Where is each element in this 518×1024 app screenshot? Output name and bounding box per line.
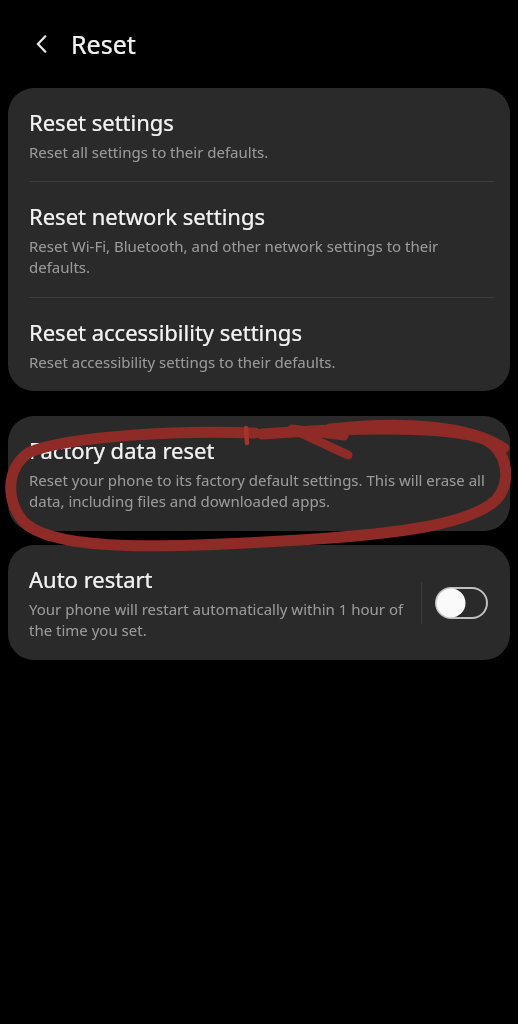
staticText: Reset accessibility settings to their de… bbox=[29, 352, 336, 372]
staticText: Reset bbox=[71, 27, 136, 61]
button[interactable]: Reset accessibility settings bbox=[8, 298, 510, 391]
button[interactable]: Reset settings bbox=[8, 88, 510, 181]
staticText: Reset all settings to their defaults. bbox=[29, 142, 269, 162]
staticText: Reset Wi-Fi, Bluetooth, and other networ… bbox=[29, 236, 486, 278]
staticText: Reset your phone to its factory default … bbox=[29, 470, 486, 512]
button[interactable]: Back bbox=[22, 24, 62, 64]
staticText: Reset settings bbox=[29, 107, 174, 137]
staticText: Auto restart bbox=[29, 564, 153, 594]
staticText: Your phone will restart automatically wi… bbox=[29, 599, 411, 641]
button[interactable]: Factory data reset bbox=[8, 416, 510, 531]
staticText: Reset network settings bbox=[29, 201, 265, 231]
button[interactable]: Auto restart bbox=[8, 545, 421, 660]
button[interactable]: Reset network settings bbox=[8, 182, 510, 297]
button[interactable]: Auto restart toggle, off bbox=[436, 583, 490, 623]
staticText: Factory data reset bbox=[29, 435, 215, 465]
staticText: Reset accessibility settings bbox=[29, 317, 302, 347]
